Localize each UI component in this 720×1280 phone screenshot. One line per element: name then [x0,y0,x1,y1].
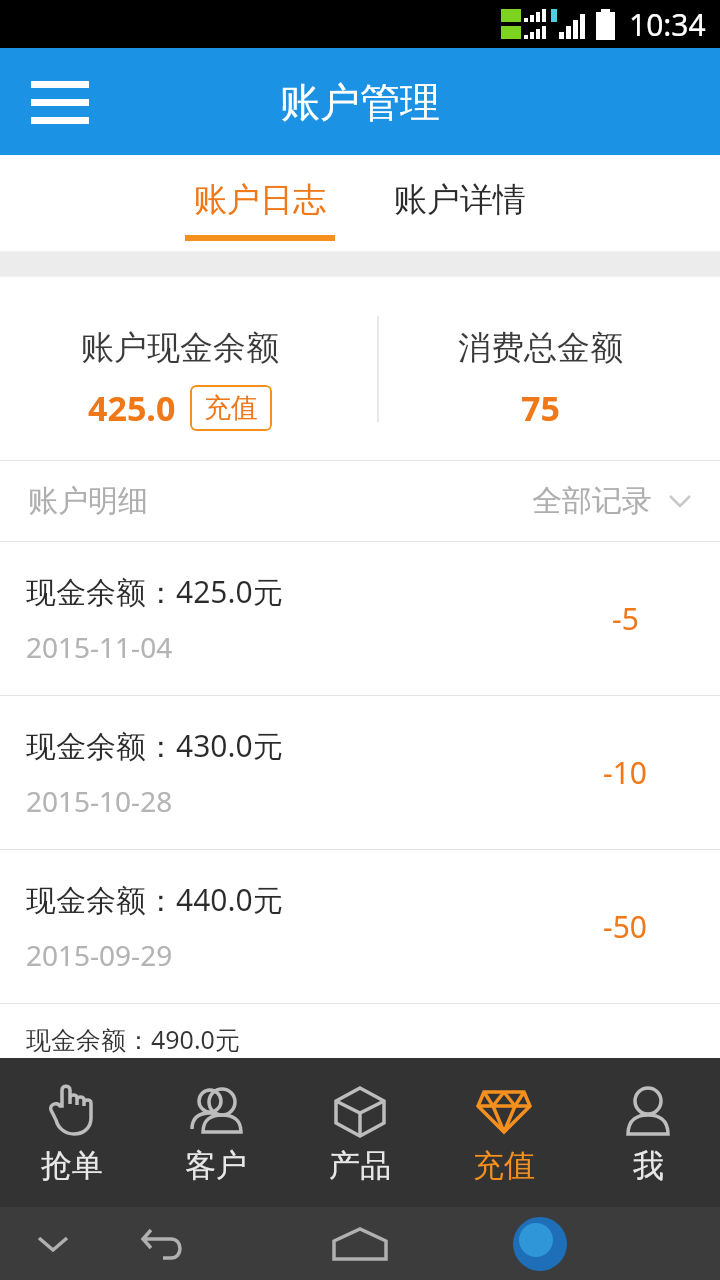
staticText: 我 [633,1146,664,1185]
staticText: 账户现金余额 [81,327,279,369]
button[interactable]: 抢单 [0,1058,144,1207]
staticText: 充值 [204,391,258,425]
button[interactable]: Hide [18,1209,88,1279]
staticText: 客户 [185,1146,247,1185]
staticText: -50 [603,906,647,947]
button[interactable]: 现金余额：430.0元 [0,696,720,849]
staticText: -5 [612,598,639,639]
staticText: 账户日志 [194,179,326,221]
staticText: 现金余额：430.0元 [26,725,283,766]
staticText: 现金余额：490.0元 [26,1022,240,1056]
staticText: 10:34 [629,4,706,45]
staticText: 账户管理 [280,77,440,127]
button[interactable]: 充值 [432,1058,576,1207]
staticText: 消费总金额 [458,327,623,369]
button[interactable]: 现金余额：440.0元 [0,850,720,1003]
staticText: 账户明细 [28,482,148,520]
staticText: -10 [603,752,647,793]
button[interactable]: 充值 [190,385,272,431]
staticText: 账户详情 [394,179,526,221]
staticText: 全部记录 [532,482,652,520]
button[interactable]: 产品 [288,1058,432,1207]
button[interactable]: Back [125,1207,205,1280]
button[interactable]: 账户日志 [185,155,335,251]
staticText: 抢单 [41,1146,103,1185]
staticText: 2015-11-04 [26,628,173,666]
staticText: 充值 [473,1146,535,1185]
button[interactable]: 现金余额：425.0元 [0,542,720,695]
button[interactable]: 账户详情 [385,155,535,251]
staticText: 75 [521,385,560,431]
button[interactable]: 我 [576,1058,720,1207]
staticText: 425.0 [88,385,176,431]
staticText: 2015-10-28 [26,782,173,820]
button[interactable]: 客户 [144,1058,288,1207]
staticText: 现金余额：440.0元 [26,879,283,920]
button[interactable]: 全部记录 [532,482,692,520]
staticText: 产品 [329,1146,391,1185]
button[interactable]: Menu [18,67,102,137]
staticText: 现金余额：425.0元 [26,571,283,612]
button[interactable]: Home [315,1207,405,1280]
staticText: 2015-09-29 [26,936,173,974]
